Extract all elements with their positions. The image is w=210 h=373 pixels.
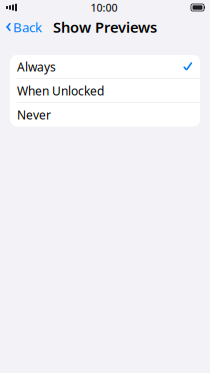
button[interactable]: Back xyxy=(0,14,48,40)
staticText: Show Previews xyxy=(53,17,157,37)
staticText: 10:00 xyxy=(90,0,117,15)
button[interactable]: When Unlocked xyxy=(10,79,200,102)
staticText: Back xyxy=(13,18,42,36)
staticText: Never xyxy=(17,107,51,123)
button[interactable]: Never xyxy=(10,103,200,126)
staticText: Always xyxy=(17,59,56,75)
button[interactable]: Always xyxy=(10,55,200,78)
staticText: When Unlocked xyxy=(17,83,104,99)
